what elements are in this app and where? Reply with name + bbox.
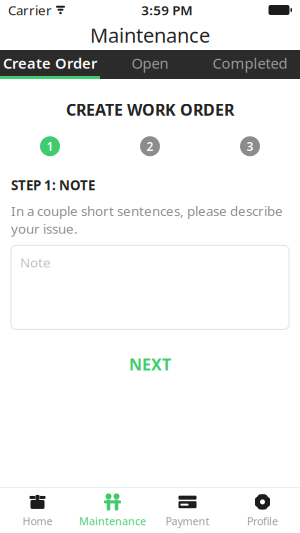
staticText: 1 <box>46 138 53 154</box>
staticText: Completed <box>212 53 287 73</box>
button[interactable]: Payment <box>150 488 225 533</box>
staticText: Maintenance <box>79 514 146 528</box>
staticText: 3:59 PM <box>141 1 192 19</box>
staticText: 3 <box>246 138 253 154</box>
button[interactable]: Maintenance <box>75 488 150 533</box>
staticText: Create Order <box>3 53 97 73</box>
staticText: Note <box>20 253 51 271</box>
staticText: Payment <box>165 514 209 528</box>
staticText: Profile <box>247 514 278 528</box>
staticText: Carrier <box>8 1 52 19</box>
button[interactable]: Completed <box>200 50 300 79</box>
staticText: Home <box>22 514 52 528</box>
staticText: Maintenance <box>90 22 210 48</box>
staticText: NEXT <box>129 354 171 375</box>
button[interactable]: Open <box>100 50 200 79</box>
staticText: In a couple short sentences, please desc… <box>11 202 283 237</box>
button[interactable]: Profile <box>225 488 300 533</box>
staticText: STEP 1: NOTE <box>11 176 95 194</box>
button[interactable]: NEXT <box>0 351 300 377</box>
button[interactable]: Home <box>0 488 75 533</box>
staticText: Open <box>131 53 168 73</box>
staticText: CREATE WORK ORDER <box>66 99 234 120</box>
staticText: 2 <box>146 138 153 154</box>
button[interactable]: Create Order <box>0 50 100 79</box>
